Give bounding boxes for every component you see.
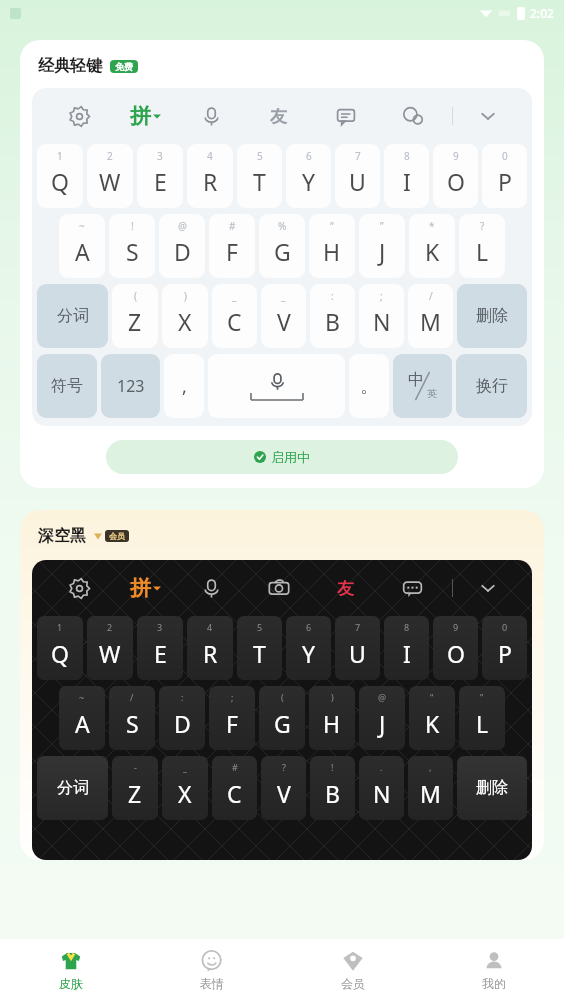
button[interactable]: # [209, 214, 255, 278]
button[interactable]: 8 [384, 144, 429, 208]
button[interactable]: 6 [286, 616, 331, 680]
button[interactable]: Settings [46, 560, 112, 616]
button[interactable]: 拼 [112, 560, 178, 616]
button[interactable]: - [112, 756, 158, 820]
button[interactable]: Settings [46, 88, 112, 144]
button[interactable]: 会员 [282, 939, 423, 1001]
button[interactable]: ) [309, 686, 355, 750]
button[interactable]: 符号 [37, 354, 97, 418]
staticText: 6 [306, 149, 312, 163]
button[interactable]: Chinese English toggle [393, 354, 452, 418]
button[interactable]: 8 [384, 616, 429, 680]
button[interactable]: 表情 [141, 939, 282, 1001]
button[interactable]: : [310, 284, 355, 348]
button[interactable]: 换行 [456, 354, 527, 418]
button[interactable]: 0 [482, 616, 527, 680]
button[interactable]: 9 [433, 144, 478, 208]
button[interactable]: Voice input [178, 560, 245, 616]
button[interactable]: 3 [137, 616, 183, 680]
button[interactable]: , [164, 354, 204, 418]
button[interactable]: ; [359, 284, 404, 348]
button[interactable]: 1 [37, 144, 83, 208]
button[interactable]: : [159, 686, 205, 750]
button[interactable]: 7 [335, 616, 380, 680]
button[interactable]: ? [261, 756, 306, 820]
button[interactable]: ! [109, 214, 155, 278]
button[interactable]: 0 [482, 144, 527, 208]
button[interactable]: ; [209, 686, 255, 750]
button[interactable]: 5 [237, 144, 282, 208]
button[interactable]: Clipboard [312, 88, 379, 144]
button[interactable]: 6 [286, 144, 331, 208]
button[interactable]: ” [459, 686, 505, 750]
button[interactable]: 7 [335, 144, 380, 208]
button[interactable]: 9 [433, 616, 478, 680]
button[interactable]: 3 [137, 144, 183, 208]
button[interactable]: Messages [379, 560, 446, 616]
button[interactable]: Collapse keyboard [458, 88, 518, 144]
button[interactable]: Emoji pack [245, 88, 312, 144]
button[interactable]: 皮肤 [0, 939, 141, 1001]
button[interactable]: Emoji [379, 88, 446, 144]
button[interactable]: 2 [87, 144, 133, 208]
staticText: O [447, 166, 465, 197]
staticText: C [227, 306, 242, 337]
button[interactable]: 1 [37, 616, 83, 680]
button[interactable]: 启用中 [106, 440, 458, 474]
button[interactable]: ~ [59, 214, 105, 278]
button[interactable]: Camera [245, 560, 312, 616]
button[interactable]: ! [310, 756, 355, 820]
button[interactable]: _ [162, 756, 208, 820]
button[interactable]: 5 [237, 616, 282, 680]
button[interactable]: * [409, 214, 455, 278]
button[interactable]: _ [212, 284, 257, 348]
button[interactable]: . [359, 756, 404, 820]
button[interactable]: 分词 [37, 284, 108, 348]
button[interactable]: “ [409, 686, 455, 750]
button[interactable]: 。 [349, 354, 389, 418]
button[interactable]: 删除 [457, 284, 527, 348]
staticText: : [331, 289, 334, 303]
staticText: ; [231, 691, 234, 703]
staticText: A [75, 236, 90, 267]
button[interactable]: 123 [101, 354, 160, 418]
staticText: . [380, 761, 383, 773]
button[interactable]: 拼 [112, 88, 178, 144]
button[interactable]: ( [112, 284, 158, 348]
button[interactable]: ) [162, 284, 208, 348]
button[interactable]: Voice input [178, 88, 245, 144]
staticText: P [498, 638, 512, 669]
button[interactable]: “ [309, 214, 355, 278]
staticText: S [126, 708, 139, 739]
button[interactable]: 2 [87, 616, 133, 680]
button[interactable]: 删除 [457, 756, 527, 820]
button[interactable]: 经典轻键 [20, 40, 544, 488]
staticText: W [99, 166, 121, 197]
button[interactable]: / [408, 284, 453, 348]
staticText: Q [51, 166, 69, 197]
button[interactable]: ~ [59, 686, 105, 750]
button[interactable]: ” [359, 214, 405, 278]
staticText: 5 [257, 621, 263, 633]
button[interactable]: , [408, 756, 453, 820]
button[interactable]: Collapse keyboard [458, 560, 518, 616]
button[interactable]: @ [359, 686, 405, 750]
staticText: N [373, 306, 391, 337]
button[interactable]: Space, voice input [208, 354, 345, 418]
button[interactable]: ? [459, 214, 505, 278]
button[interactable]: _ [261, 284, 306, 348]
button[interactable]: 深空黑 [20, 510, 544, 860]
button[interactable]: Emoji pack [312, 560, 379, 616]
staticText: E [154, 166, 167, 197]
button[interactable]: / [109, 686, 155, 750]
button[interactable]: 我的 [423, 939, 564, 1001]
button[interactable]: ( [259, 686, 305, 750]
button[interactable]: 分词 [37, 756, 108, 820]
button[interactable]: 4 [187, 616, 233, 680]
button[interactable]: # [212, 756, 257, 820]
button[interactable]: % [259, 214, 305, 278]
staticText: ! [331, 761, 334, 773]
staticText: F [226, 708, 238, 739]
button[interactable]: 4 [187, 144, 233, 208]
button[interactable]: @ [159, 214, 205, 278]
